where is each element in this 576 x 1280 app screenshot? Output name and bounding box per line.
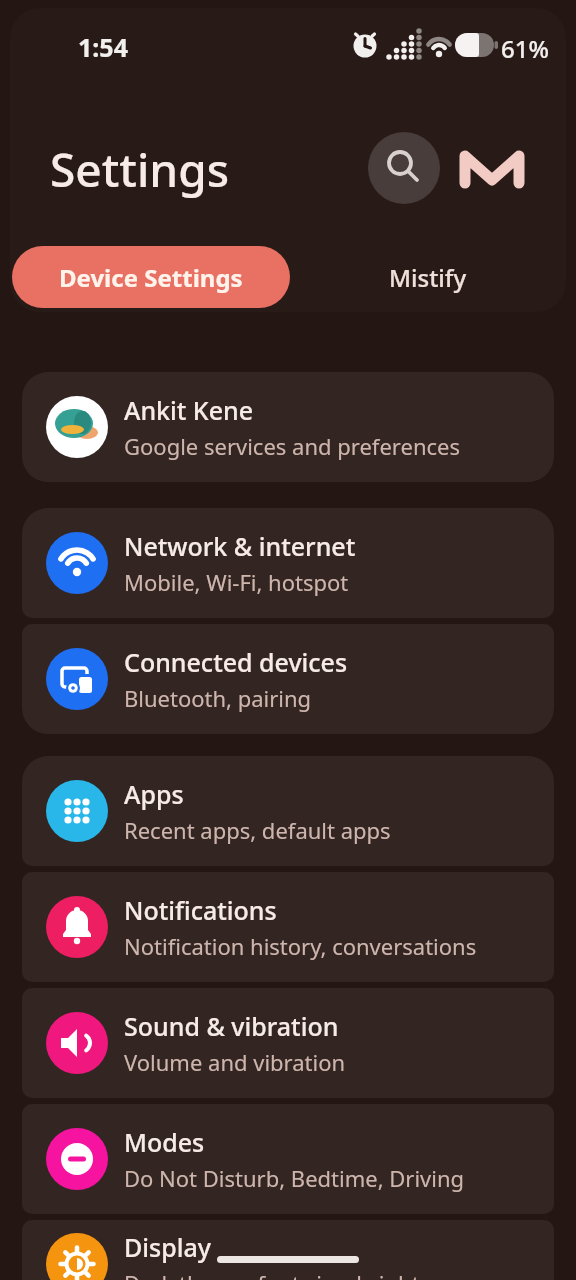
- button[interactable]: Mistify: [290, 246, 566, 308]
- staticText: 1:54: [78, 30, 128, 64]
- staticText: Display: [124, 1230, 211, 1264]
- staticText: Mobile, Wi-Fi, hotspot: [124, 567, 349, 597]
- staticText: Sound & vibration: [124, 1009, 339, 1043]
- button[interactable]: Notifications: [22, 872, 554, 982]
- staticText: Network & internet: [124, 529, 356, 563]
- staticText: Do Not Disturb, Bedtime, Driving: [124, 1163, 465, 1193]
- staticText: Volume and vibration: [124, 1047, 346, 1077]
- staticText: Device Settings: [59, 261, 243, 294]
- staticText: Connected devices: [124, 645, 348, 679]
- button[interactable]: Sound & vibration: [22, 988, 554, 1098]
- staticText: Mistify: [389, 261, 467, 294]
- button[interactable]: [368, 132, 440, 204]
- staticText: Notification history, conversations: [124, 931, 477, 961]
- button[interactable]: Connected devices: [22, 624, 554, 734]
- staticText: Ankit Kene: [124, 393, 254, 427]
- staticText: Modes: [124, 1125, 205, 1159]
- button[interactable]: Ankit Kene: [22, 372, 554, 482]
- button[interactable]: Display: [22, 1220, 554, 1280]
- button[interactable]: [458, 146, 526, 192]
- staticText: Recent apps, default apps: [124, 815, 391, 845]
- staticText: Dark theme, font size, brightness: [124, 1268, 467, 1280]
- staticText: Bluetooth, pairing: [124, 683, 312, 713]
- staticText: Settings: [50, 138, 230, 201]
- button[interactable]: Device Settings: [12, 246, 290, 308]
- button[interactable]: Apps: [22, 756, 554, 866]
- staticText: Google services and preferences: [124, 431, 460, 461]
- button[interactable]: Network & internet: [22, 508, 554, 618]
- staticText: Notifications: [124, 893, 277, 927]
- button[interactable]: Modes: [22, 1104, 554, 1214]
- staticText: Apps: [124, 777, 184, 811]
- staticText: 61%: [501, 32, 549, 65]
